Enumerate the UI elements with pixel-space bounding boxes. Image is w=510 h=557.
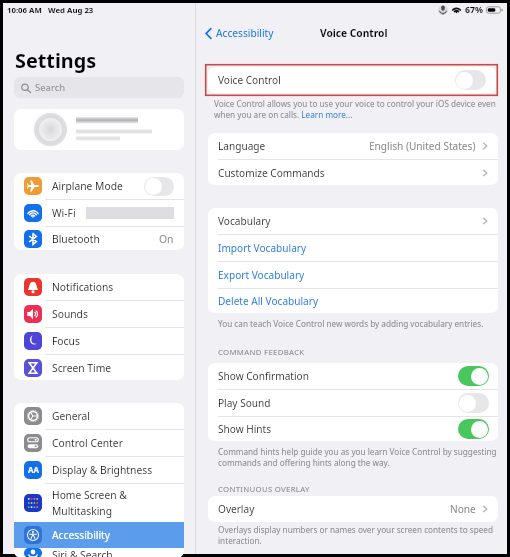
staticText: Show Confirmation xyxy=(218,369,309,383)
staticText: Search xyxy=(35,81,66,94)
button[interactable]: Export Vocabulary xyxy=(208,262,498,288)
button[interactable]: Screen Time xyxy=(14,355,184,380)
staticText: Overlay xyxy=(218,502,255,516)
button[interactable]: Off xyxy=(458,393,489,413)
button[interactable]: Customize Commands xyxy=(208,160,498,185)
staticText: Settings xyxy=(15,47,97,74)
button[interactable]: Language xyxy=(208,133,498,159)
staticText: Airplane Mode xyxy=(52,179,123,193)
staticText: Delete All Vocabulary xyxy=(218,294,319,308)
staticText: Show Hints xyxy=(218,422,272,436)
button[interactable]: Delete All Vocabulary xyxy=(208,289,498,313)
button[interactable]: Sounds xyxy=(14,301,184,327)
staticText: Voice Control xyxy=(320,26,388,40)
button[interactable]: Focus xyxy=(14,328,184,354)
staticText: Sounds xyxy=(52,307,88,321)
button[interactable]: Import Vocabulary xyxy=(208,235,498,261)
button[interactable]: Voice Control xyxy=(208,67,496,93)
staticText: Focus xyxy=(52,334,80,348)
button[interactable]: Wi-Fi xyxy=(14,200,184,226)
staticText: Screen Time xyxy=(52,361,112,375)
button[interactable]: Accessibility xyxy=(203,24,276,42)
staticText: AA xyxy=(28,465,39,476)
staticText: Wi-Fi xyxy=(52,206,76,220)
staticText: General xyxy=(52,409,90,423)
staticText: Voice Control allows you to use your voi… xyxy=(214,98,507,120)
button[interactable]: Off xyxy=(455,70,486,90)
button[interactable]: Play Sound xyxy=(208,390,498,416)
staticText: Multitasking xyxy=(52,504,113,518)
staticText: Accessibility xyxy=(216,26,274,40)
staticText: 10:06 AM xyxy=(7,5,42,16)
staticText: Command hints help guide you as you lear… xyxy=(218,446,505,468)
staticText: Vocabulary xyxy=(218,214,271,228)
staticText: Overlays display numbers or names over y… xyxy=(218,524,503,546)
button[interactable] xyxy=(14,109,184,150)
staticText: Play Sound xyxy=(218,396,271,410)
staticText: COMMAND FEEDBACK xyxy=(218,347,305,358)
button[interactable]: Bluetooth xyxy=(14,227,184,250)
staticText: CONTINUOUS OVERLAY xyxy=(218,484,310,495)
button[interactable]: Siri & Search xyxy=(14,548,184,557)
button[interactable]: Accessibility xyxy=(14,522,184,548)
button[interactable]: Search xyxy=(14,77,184,98)
button[interactable]: Notifications xyxy=(14,274,184,300)
staticText: Home Screen & xyxy=(52,488,127,502)
button[interactable]: On xyxy=(458,419,489,439)
staticText: Voice Control xyxy=(218,73,281,87)
button[interactable]: Off xyxy=(144,177,174,196)
button[interactable]: Overlay xyxy=(208,496,498,522)
staticText: English (United States) xyxy=(369,139,476,153)
staticText: Import Vocabulary xyxy=(218,241,307,255)
staticText: Language xyxy=(218,139,266,153)
button[interactable]: Vocabulary xyxy=(208,208,498,234)
staticText: You can teach Voice Control new words by… xyxy=(218,318,484,329)
staticText: Customize Commands xyxy=(218,166,325,180)
staticText: Bluetooth xyxy=(52,232,100,246)
other: Battery xyxy=(486,5,502,15)
button[interactable]: Show Confirmation xyxy=(208,363,498,389)
button[interactable]: General xyxy=(14,403,184,429)
staticText: Control Center xyxy=(52,436,123,450)
button[interactable]: AA xyxy=(14,457,184,483)
staticText: Wed Aug 23 xyxy=(48,5,94,16)
staticText: Siri & Search xyxy=(52,548,113,557)
staticText: None xyxy=(450,502,476,516)
staticText: 67% xyxy=(465,4,483,16)
staticText: On xyxy=(159,232,174,246)
other: Wi-Fi xyxy=(451,5,462,15)
button[interactable]: Airplane Mode xyxy=(14,173,184,199)
button[interactable]: Show Hints xyxy=(208,417,498,441)
staticText: Notifications xyxy=(52,280,114,294)
staticText: Display & Brightness xyxy=(52,463,153,477)
button[interactable]: Home Screen & xyxy=(14,484,184,522)
button[interactable]: On xyxy=(458,366,489,386)
button[interactable]: Control Center xyxy=(14,430,184,456)
staticText: Accessibility xyxy=(52,528,111,542)
staticText: Export Vocabulary xyxy=(218,268,305,282)
other: Microphone in use xyxy=(438,5,448,15)
